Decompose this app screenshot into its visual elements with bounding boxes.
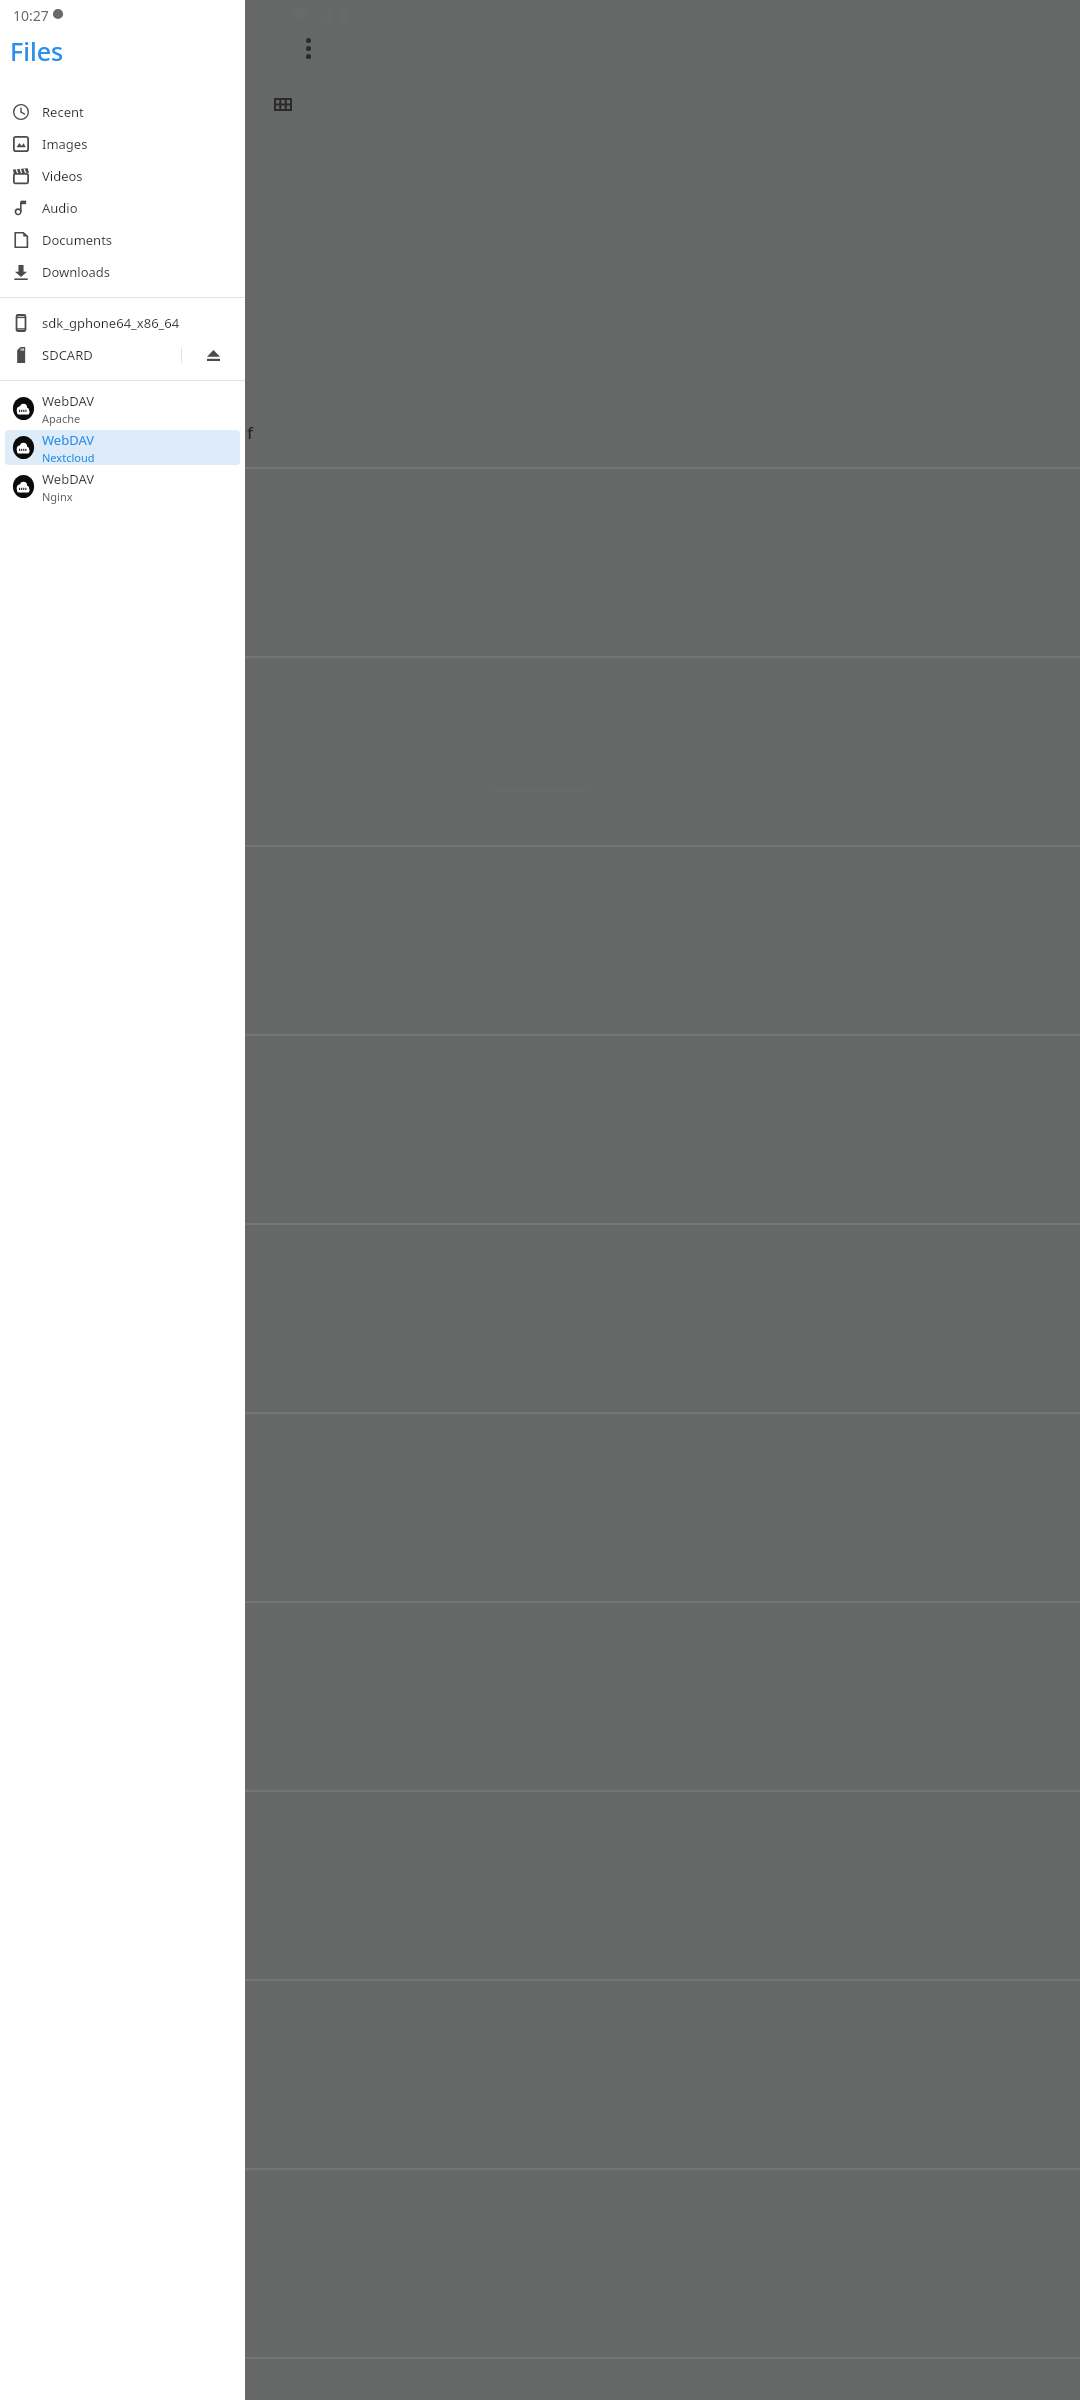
staticText: Images <box>42 135 88 153</box>
staticText: Documents <box>42 231 113 249</box>
button[interactable]: WebDAV <box>5 391 240 426</box>
button[interactable]: Downloads <box>0 256 245 288</box>
button[interactable]: Audio <box>0 192 245 224</box>
staticText: Videos <box>42 167 83 185</box>
button[interactable]: WebDAV <box>5 430 240 465</box>
button[interactable]: SDCARD <box>0 339 245 371</box>
staticText: Nextcloud <box>42 450 95 465</box>
staticText: f <box>247 421 254 444</box>
button[interactable]: WebDAV <box>5 469 240 504</box>
staticText: SDCARD <box>42 346 93 364</box>
staticText: Downloads <box>42 263 111 281</box>
staticText: WebDAV <box>42 431 94 449</box>
staticText: 10:27 <box>13 6 49 25</box>
staticText: Nginx <box>42 489 73 504</box>
staticText: Apache <box>42 411 81 426</box>
button[interactable]: More options <box>288 28 328 68</box>
button[interactable]: Eject SDCARD <box>182 339 245 371</box>
button[interactable]: Videos <box>0 160 245 192</box>
button[interactable]: sdk_gphone64_x86_64 <box>0 307 245 339</box>
staticText: WebDAV <box>42 470 94 488</box>
button[interactable]: Recent <box>0 96 245 128</box>
button[interactable]: Grid view <box>263 84 303 124</box>
staticText: Audio <box>42 199 78 217</box>
staticText: WebDAV <box>42 392 94 410</box>
button[interactable]: Documents <box>0 224 245 256</box>
staticText: sdk_gphone64_x86_64 <box>42 314 180 332</box>
staticText: Files <box>10 34 64 68</box>
button[interactable]: Images <box>0 128 245 160</box>
staticText: Recent <box>42 103 84 121</box>
